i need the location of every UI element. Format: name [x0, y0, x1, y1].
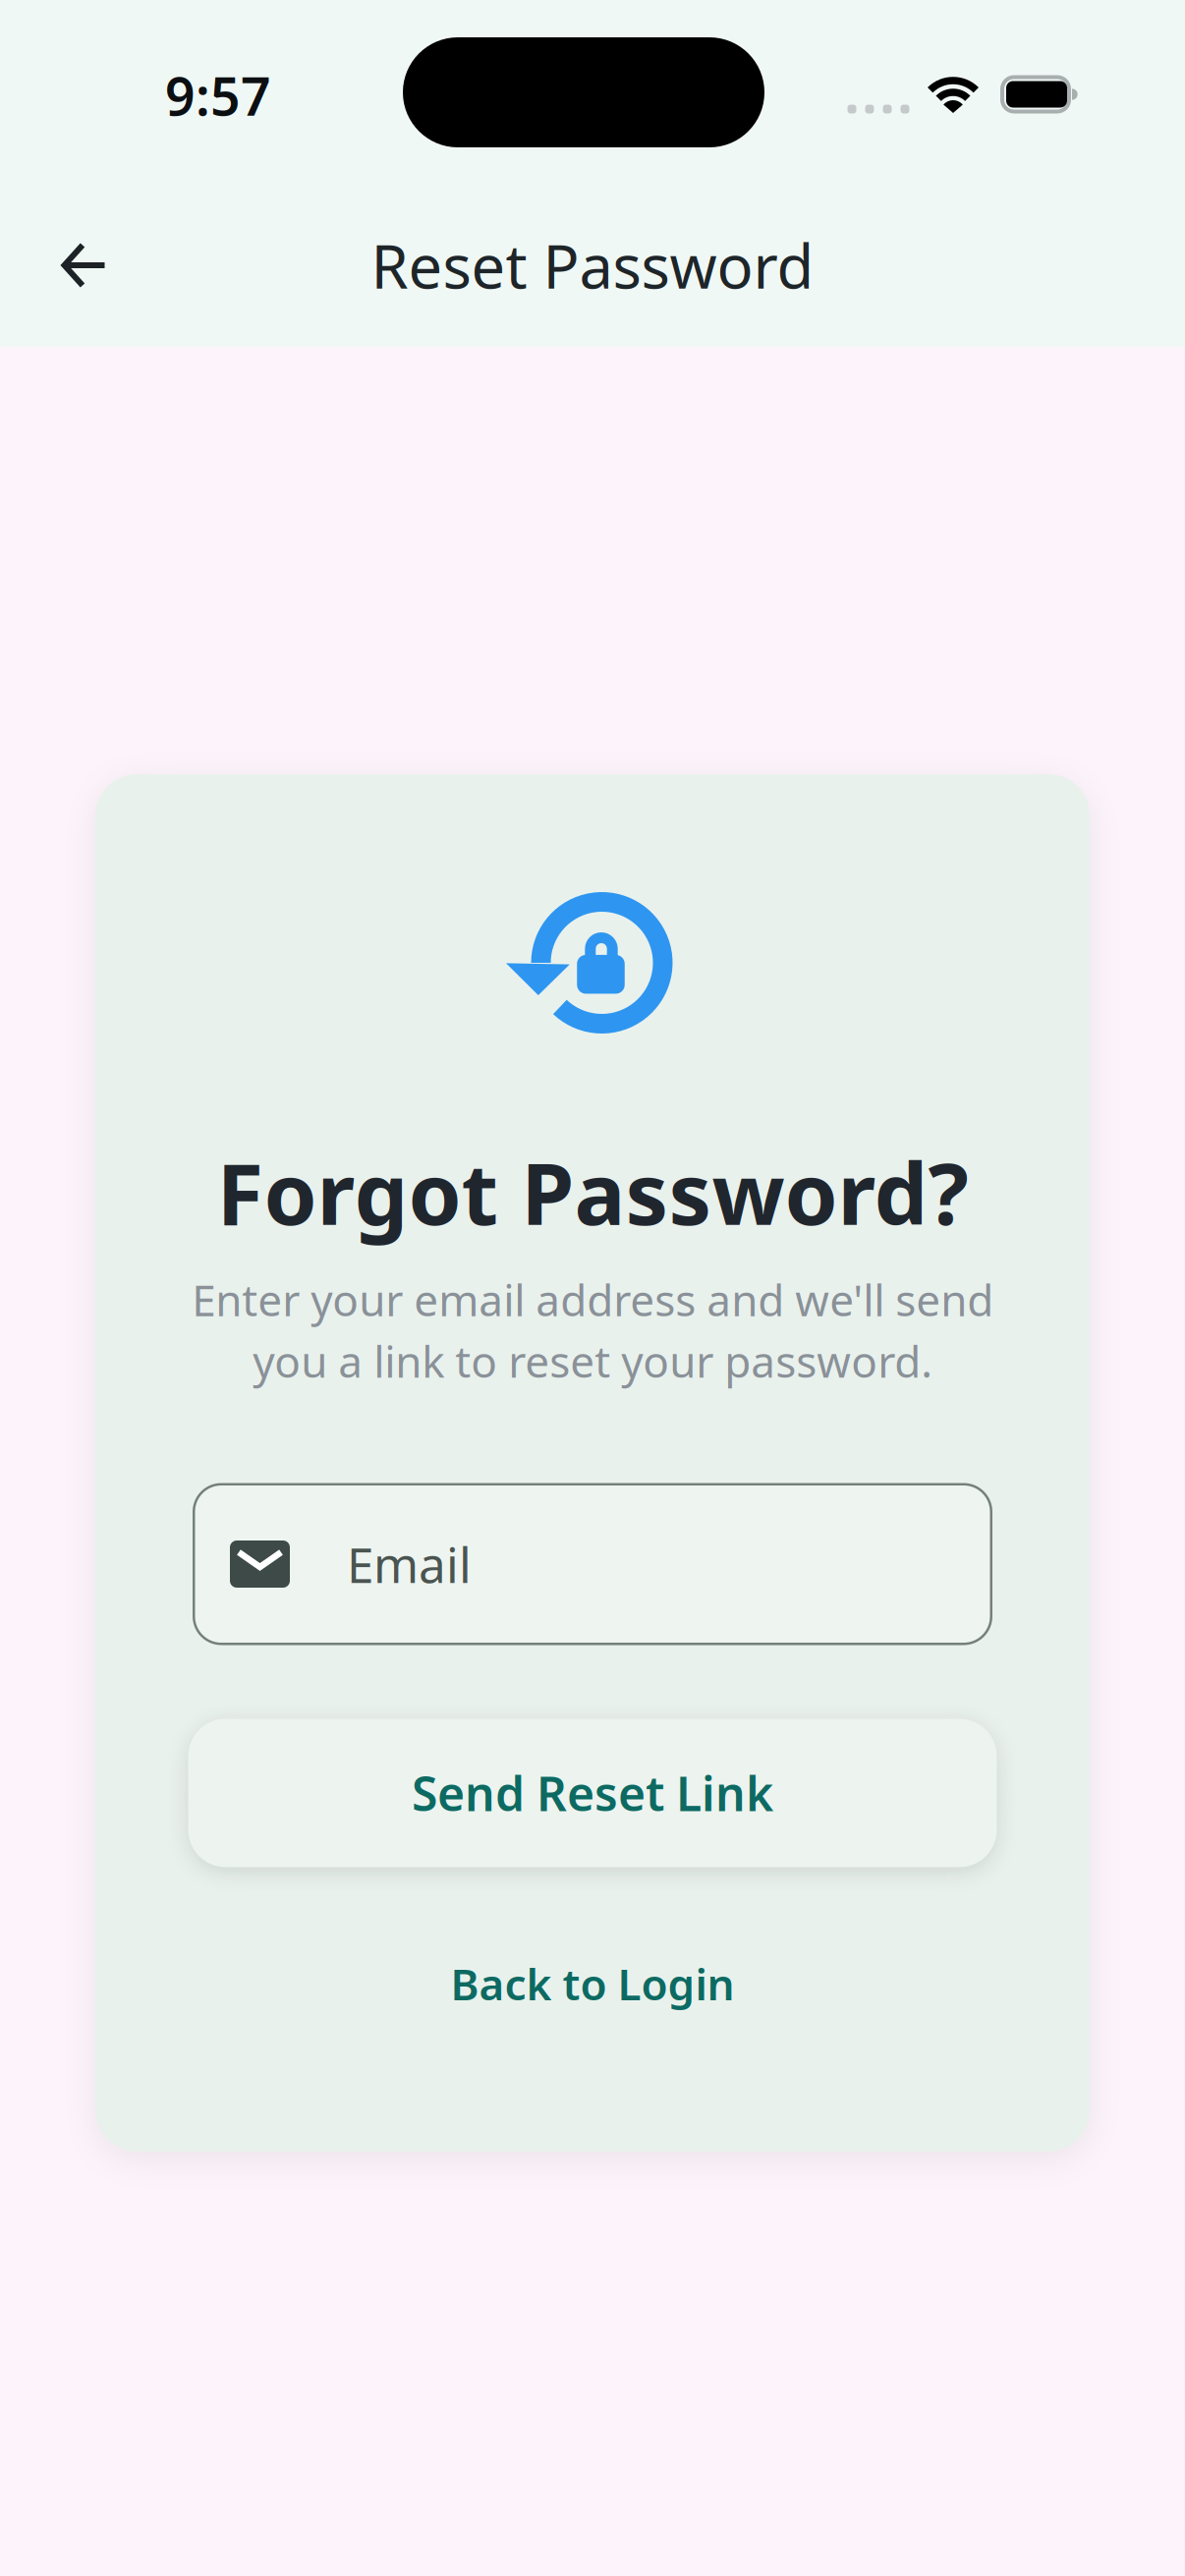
button[interactable]: Send Reset Link — [188, 1719, 997, 1867]
button[interactable]: Back to Login — [451, 1955, 734, 2012]
button[interactable]: Email — [193, 1483, 992, 1645]
staticText: Enter your email address and we'll send … — [192, 1271, 993, 1390]
staticText: 9:57 — [165, 61, 271, 130]
button[interactable]: Back — [39, 220, 130, 310]
staticText: Reset Password — [371, 225, 814, 305]
staticText: Back to Login — [451, 1955, 734, 2012]
staticText: Email — [347, 1532, 472, 1596]
staticText: Forgot Password? — [217, 1135, 968, 1248]
staticText: Send Reset Link — [412, 1762, 773, 1824]
